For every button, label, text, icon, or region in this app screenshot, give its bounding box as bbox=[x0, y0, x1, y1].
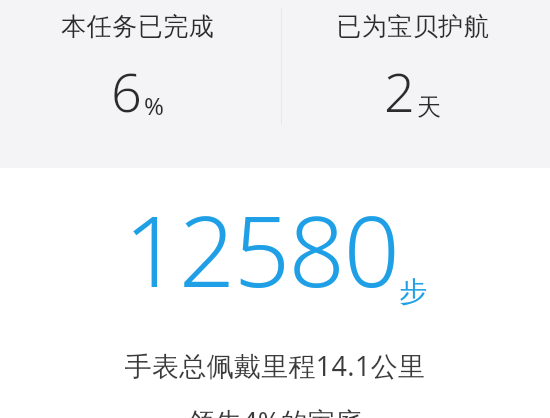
button[interactable]: 12580 bbox=[0, 168, 550, 418]
staticText: 2 bbox=[384, 54, 415, 128]
button[interactable]: 本任务已完成 bbox=[0, 0, 275, 128]
staticText: 12580 bbox=[124, 182, 399, 315]
staticText: 6 bbox=[111, 54, 142, 128]
button[interactable]: 已为宝贝护航 bbox=[275, 0, 550, 128]
staticText: 步 bbox=[399, 274, 427, 309]
staticText: % bbox=[144, 89, 164, 122]
staticText: 领先4%的家庭 bbox=[0, 403, 550, 418]
staticText: 已为宝贝护航 bbox=[336, 11, 489, 42]
staticText: 天 bbox=[417, 92, 441, 122]
staticText: 本任务已完成 bbox=[61, 11, 214, 42]
staticText: 手表总佩戴里程14.1公里 bbox=[0, 347, 550, 384]
